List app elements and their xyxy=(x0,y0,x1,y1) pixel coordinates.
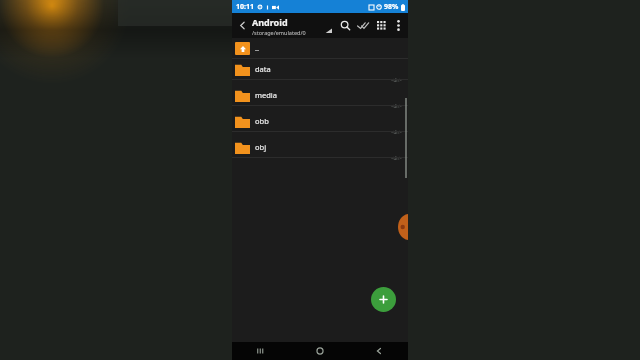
button[interactable]: Back xyxy=(349,342,408,360)
button[interactable]: Add xyxy=(371,287,396,312)
staticText: 98% xyxy=(384,2,399,12)
staticText: media xyxy=(255,90,277,100)
button[interactable]: Android xyxy=(252,16,325,36)
button[interactable]: Grid view xyxy=(372,13,390,38)
staticText: <dir> xyxy=(391,129,402,135)
staticText: obj xyxy=(255,142,267,152)
staticText: Android xyxy=(252,16,288,28)
button[interactable]: Back xyxy=(232,13,252,38)
staticText: .. xyxy=(255,43,260,53)
button[interactable]: data xyxy=(232,59,408,85)
button[interactable]: Recent apps xyxy=(232,342,290,360)
button[interactable]: Search xyxy=(336,13,354,38)
staticText: <dir> xyxy=(391,103,402,109)
button[interactable]: obj xyxy=(232,137,408,163)
staticText: <dir> xyxy=(391,77,402,83)
button[interactable]: obb xyxy=(232,111,408,137)
button[interactable]: Select all xyxy=(354,13,372,38)
button[interactable]: .. xyxy=(232,38,408,59)
staticText: <dir> xyxy=(391,155,402,161)
staticText: obb xyxy=(255,116,269,126)
staticText: data xyxy=(255,64,271,74)
button[interactable]: Home xyxy=(290,342,349,360)
button[interactable]: More options xyxy=(390,13,406,38)
staticText: 10:11 xyxy=(236,2,254,12)
button[interactable]: media xyxy=(232,85,408,111)
staticText: /storage/emulated/0 xyxy=(252,29,306,36)
